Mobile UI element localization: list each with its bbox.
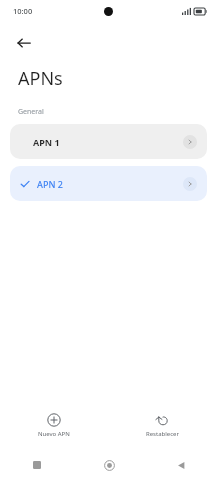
button[interactable]: Back: [145, 454, 217, 476]
staticText: Nuevo APN: [38, 430, 70, 438]
button[interactable]: Back: [9, 28, 39, 58]
button[interactable]: Edit APN 1: [183, 135, 197, 149]
button[interactable]: APN 2: [10, 166, 207, 201]
button[interactable]: Edit APN 2: [183, 177, 197, 191]
staticText: APN 2: [37, 178, 63, 190]
staticText: General: [18, 107, 44, 117]
button[interactable]: Home: [73, 454, 145, 476]
button[interactable]: APN 1: [10, 124, 207, 159]
staticText: APN 1: [33, 136, 60, 148]
staticText: 10:00: [13, 6, 33, 16]
staticText: Restablecer: [146, 430, 179, 438]
staticText: APNs: [18, 66, 63, 91]
button[interactable]: Nuevo APN: [0, 409, 108, 442]
button[interactable]: Restablecer: [108, 409, 217, 442]
button[interactable]: Recents: [0, 454, 73, 476]
